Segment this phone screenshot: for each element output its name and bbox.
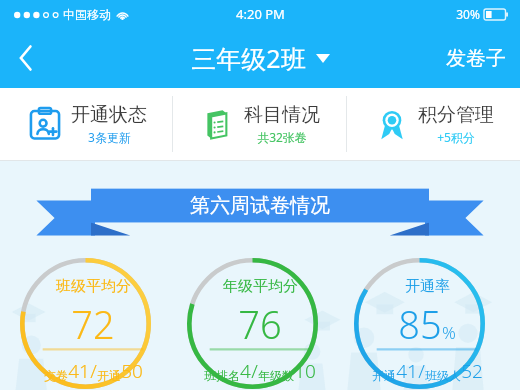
staticText: 52 bbox=[461, 358, 483, 384]
staticText: / bbox=[90, 358, 97, 384]
staticText: 三年级2班 bbox=[191, 41, 306, 75]
staticText: % bbox=[442, 321, 456, 344]
button[interactable]: 积分管理 bbox=[347, 88, 520, 160]
staticText: / bbox=[251, 358, 258, 384]
staticText: 共32张卷 bbox=[257, 129, 307, 145]
staticText: 30% bbox=[456, 6, 480, 22]
staticText: 85 bbox=[398, 298, 442, 350]
button[interactable]: 班级平均分 bbox=[19, 257, 167, 390]
staticText: 开通 bbox=[97, 368, 121, 383]
button[interactable]: 三年级2班 bbox=[191, 41, 330, 75]
staticText: 50 bbox=[121, 358, 143, 384]
staticText: 开通率 bbox=[405, 277, 450, 296]
staticText: 3条更新 bbox=[88, 129, 131, 145]
button[interactable]: 发卷子 bbox=[446, 46, 506, 71]
button[interactable]: 年级平均分 bbox=[186, 257, 334, 390]
staticText: 交卷 bbox=[44, 368, 68, 383]
staticText: 发卷子 bbox=[446, 46, 506, 71]
button[interactable]: 科目情况 bbox=[173, 88, 346, 160]
button[interactable]: 开通状态 bbox=[0, 88, 172, 160]
staticText: 班级平均分 bbox=[56, 277, 131, 296]
staticText: 76 bbox=[238, 298, 282, 350]
staticText: 41 bbox=[396, 358, 418, 384]
staticText: 科目情况 bbox=[244, 103, 320, 127]
staticText: +5积分 bbox=[437, 129, 475, 145]
staticText: 积分管理 bbox=[418, 103, 494, 127]
button[interactable]: 开通率 bbox=[353, 257, 501, 390]
staticText: 开通 bbox=[372, 368, 396, 383]
staticText: / bbox=[418, 358, 425, 384]
staticText: 41 bbox=[68, 358, 90, 384]
staticText: 年级数 bbox=[258, 368, 294, 383]
staticText: 4:20 PM bbox=[236, 5, 285, 23]
staticText: 年级平均分 bbox=[223, 277, 298, 296]
staticText: 班排名 bbox=[204, 368, 240, 383]
staticText: 4 bbox=[240, 358, 251, 384]
staticText: 72 bbox=[71, 298, 115, 350]
staticText: 10 bbox=[294, 358, 316, 384]
staticText: 第六周试卷情况 bbox=[190, 193, 330, 218]
staticText: 开通状态 bbox=[71, 103, 147, 127]
staticText: 班级人 bbox=[425, 368, 461, 383]
staticText: 中国移动 bbox=[63, 7, 111, 22]
button[interactable]: Back bbox=[0, 32, 52, 84]
